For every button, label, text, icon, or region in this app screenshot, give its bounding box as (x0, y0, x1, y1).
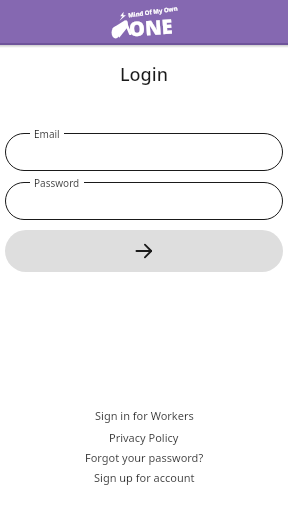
staticText: ONE (128, 12, 174, 42)
staticText: Mind Of My Own (128, 5, 178, 19)
staticText: Email (34, 127, 60, 141)
staticText: Forgot your password? (85, 450, 204, 465)
button[interactable]: Sign in for Workers (0, 405, 288, 425)
button[interactable]: Forgot your password? (0, 447, 288, 467)
staticText: Privacy Policy (109, 430, 179, 445)
staticText: Login (120, 62, 168, 86)
button[interactable]: Privacy Policy (0, 427, 288, 447)
staticText: Password (34, 176, 80, 190)
button[interactable]: Password (5, 176, 283, 220)
staticText: Sign up for account (94, 470, 195, 485)
staticText: Sign in for Workers (95, 408, 194, 423)
button[interactable]: Sign up for account (0, 467, 288, 487)
button[interactable] (5, 230, 283, 272)
button[interactable]: Email (5, 127, 283, 171)
